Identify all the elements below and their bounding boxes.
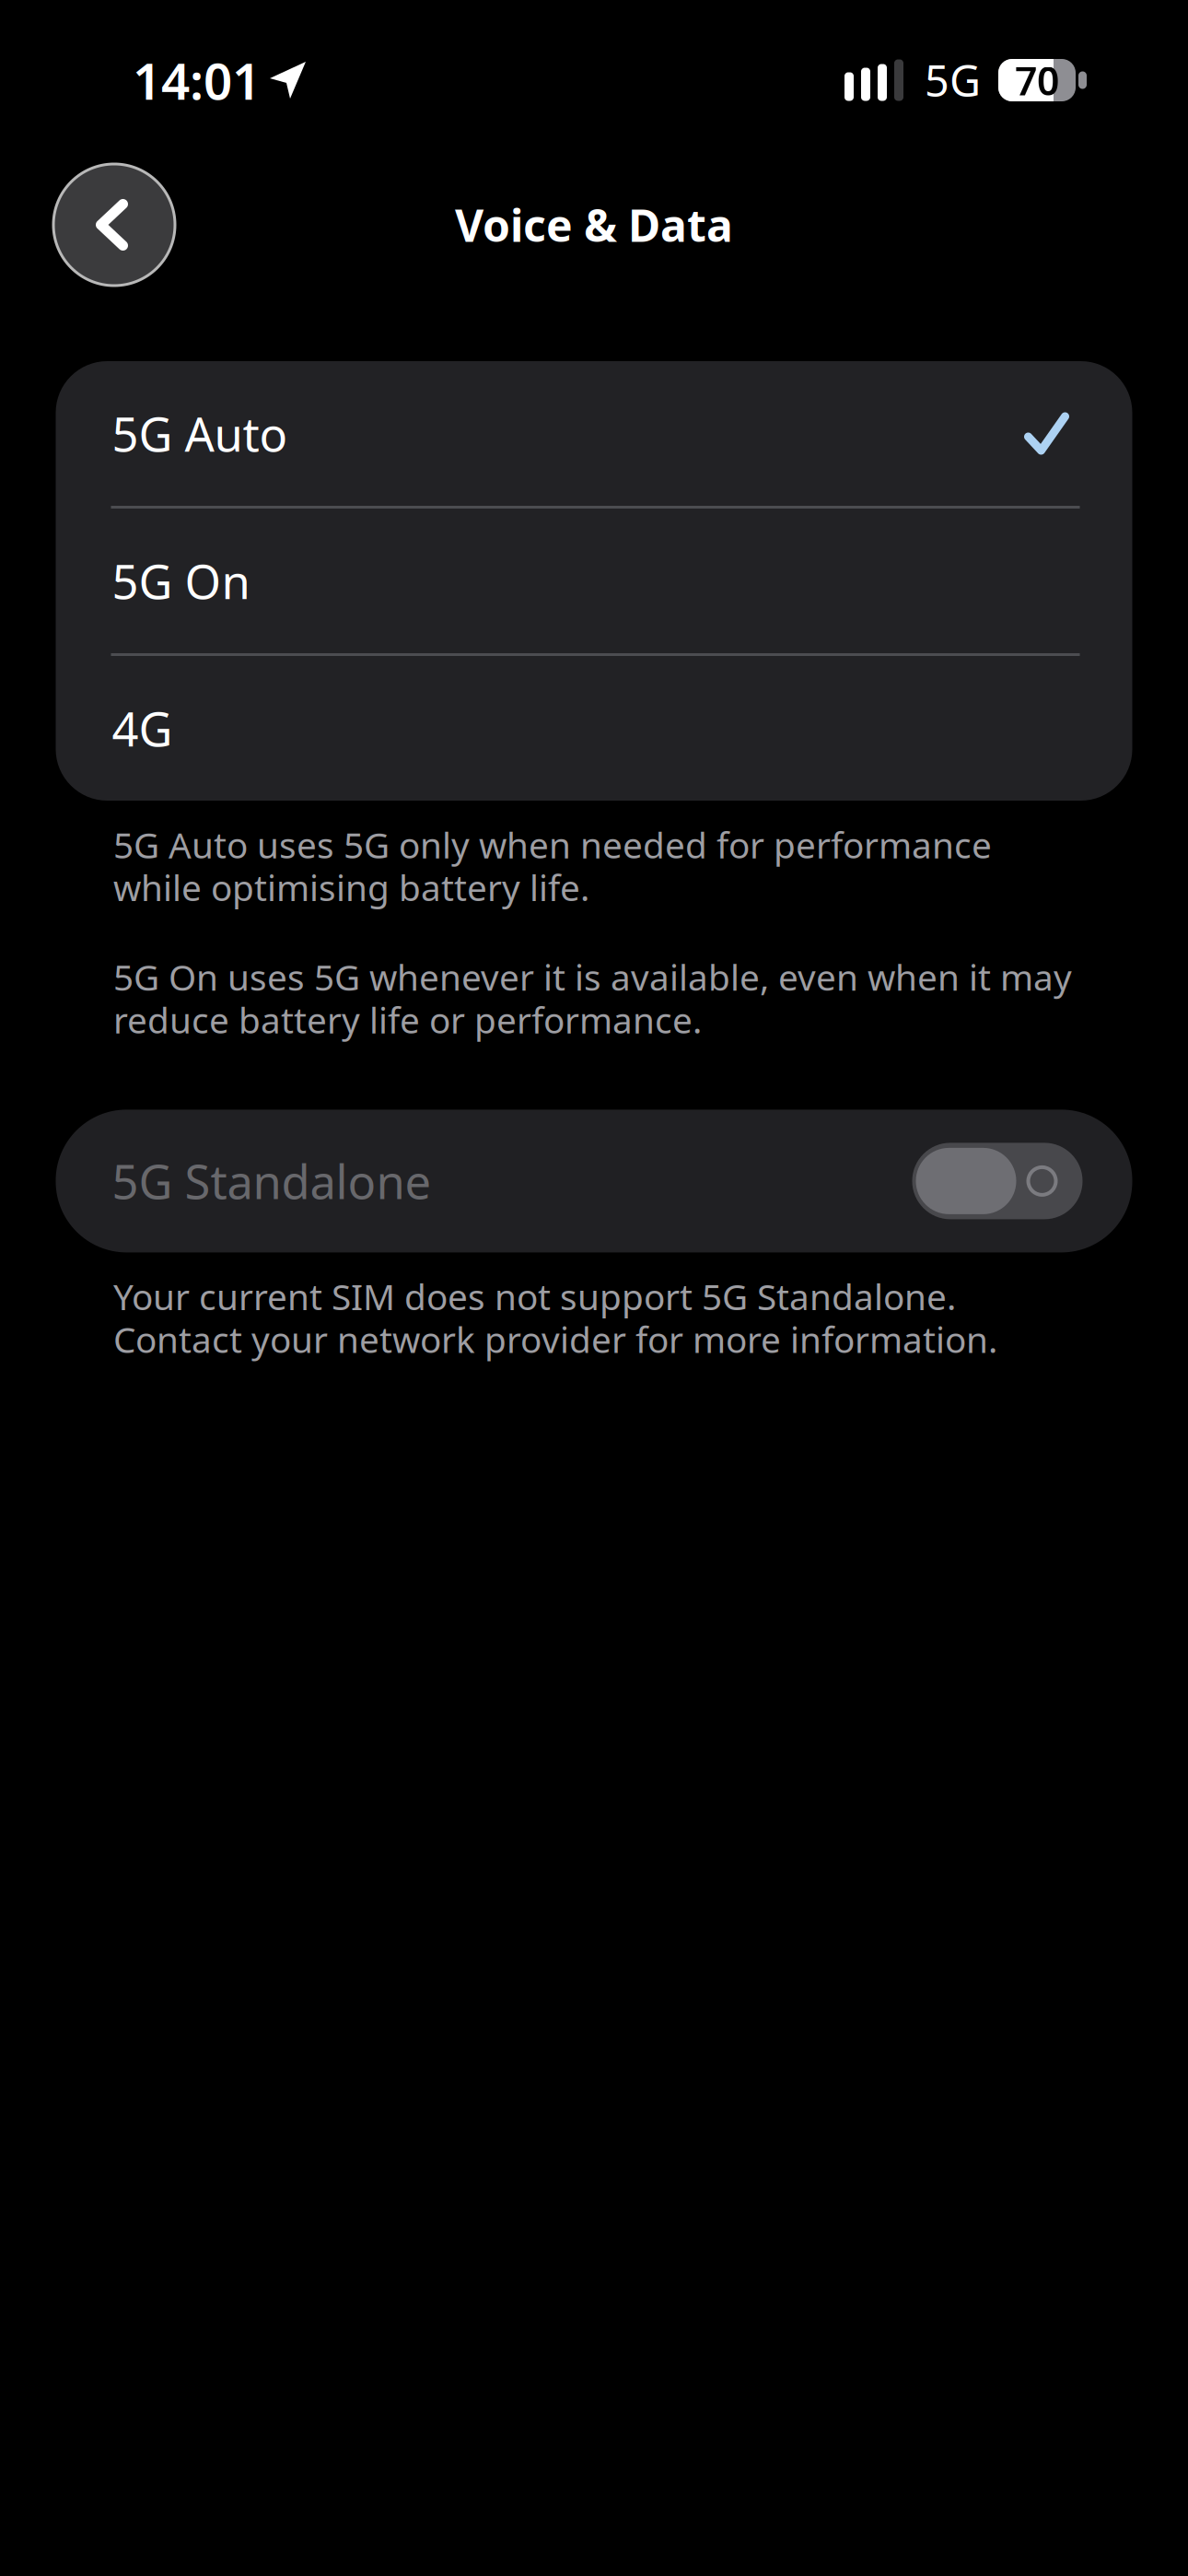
button[interactable]: 5G Standalone bbox=[56, 1110, 1132, 1252]
staticText: 5G Standalone bbox=[112, 1150, 431, 1212]
staticText: 5G bbox=[925, 52, 981, 109]
staticText: 5G On uses 5G whenever it is available, … bbox=[113, 953, 1072, 1001]
button[interactable]: 5G On bbox=[56, 509, 1132, 653]
button[interactable]: Back bbox=[53, 164, 175, 286]
staticText: reduce battery life or performance. bbox=[113, 996, 702, 1043]
staticText: 5G On bbox=[112, 550, 250, 612]
staticText: 5G Auto uses 5G only when needed for per… bbox=[113, 821, 992, 868]
button[interactable]: 5G Auto bbox=[56, 361, 1132, 506]
staticText: 70 bbox=[1015, 54, 1059, 106]
staticText: Voice & Data bbox=[455, 195, 733, 254]
staticText: Contact your network provider for more i… bbox=[113, 1315, 997, 1363]
staticText: 4G bbox=[112, 697, 173, 759]
staticText: while optimising battery life. bbox=[113, 864, 589, 911]
staticText: Your current SIM does not support 5G Sta… bbox=[113, 1273, 956, 1320]
staticText: 14:01 bbox=[133, 47, 261, 114]
button[interactable]: 4G bbox=[56, 656, 1132, 801]
staticText: 5G Auto bbox=[112, 403, 288, 465]
